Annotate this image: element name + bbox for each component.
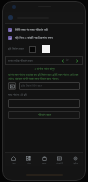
- staticText: হোম: [12, 162, 16, 164]
- staticText: ছবির ঠিকানা টাইপ করুন: [21, 84, 42, 88]
- button[interactable]: সেটিংস: [68, 153, 83, 166]
- staticText: এ ব্যাপারে আরও জানুন: [34, 67, 55, 71]
- button[interactable]: Increase: [73, 57, 80, 64]
- staticText: অ্যাপের সকল পাতাতে ব্যবহারের জন্য ছবি নি…: [8, 73, 80, 80]
- staticText: সমস্ত পাতাতে এই ছবি: [8, 93, 27, 97]
- button[interactable]: বাজার: [37, 153, 52, 166]
- staticText: সেটিংস: [73, 162, 79, 164]
- staticText: ছবি নির্বাচন করুন: [8, 47, 24, 51]
- button[interactable]: নির্দিষ্ট সময় পর সময় পরিবর্তন করি: [5, 26, 83, 34]
- staticText: অ্যাপ: [27, 162, 31, 164]
- button[interactable]: অ্যাপ: [21, 153, 36, 166]
- button[interactable]: App icon: [8, 15, 13, 20]
- staticText: অ্যাকাউন্ট: [56, 162, 63, 164]
- staticText: পরিবর্তন করুন: [38, 113, 51, 117]
- button[interactable]: পরিবর্তন করুন: [8, 111, 80, 119]
- button[interactable]: হোম: [6, 153, 21, 166]
- staticText: নির্দিষ্ট সময় পর সময় পরিবর্তন করি: [15, 28, 48, 32]
- button[interactable]: [8, 99, 80, 108]
- button[interactable]: Decrease: [59, 57, 66, 64]
- button[interactable]: এ ব্যাপারে আরও জানুন: [5, 65, 83, 72]
- button[interactable]: ঘড়ি দিয়ে এ কাজটি স্বয়ংক্রিয়ভাবে চলবে: [5, 34, 83, 42]
- button[interactable]: Black colour: [29, 46, 36, 53]
- button[interactable]: Pick image: [8, 82, 16, 90]
- staticText: ফন্টের সাইজ পরিবর্তন করুন: [8, 59, 33, 63]
- staticText: বাজার: [42, 162, 47, 164]
- staticText: ঘড়ি দিয়ে এ কাজটি স্বয়ংক্রিয়ভাবে চলবে: [15, 36, 53, 40]
- button[interactable]: অ্যাকাউন্ট: [52, 153, 67, 166]
- button[interactable]: ছবির ঠিকানা টাইপ করুন: [19, 82, 80, 90]
- staticText: ১৮: [66, 59, 69, 62]
